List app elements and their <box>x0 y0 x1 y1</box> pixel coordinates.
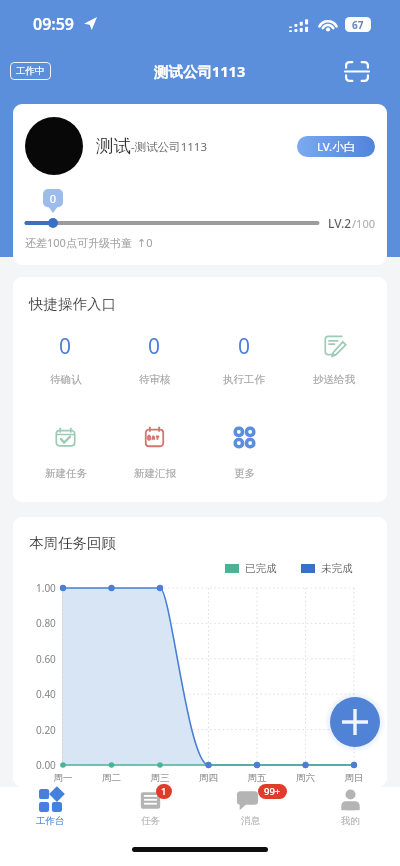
button[interactable]: 0 <box>110 332 199 386</box>
button[interactable]: 0 <box>199 332 289 386</box>
button[interactable]: 新建汇报 <box>110 426 199 480</box>
button[interactable]: 新建任务 <box>21 426 110 480</box>
staticText: 执行工作 <box>223 373 265 386</box>
staticText: 09:59 <box>33 13 75 35</box>
staticText: 1 <box>161 785 167 798</box>
button[interactable]: 我的 <box>300 787 400 832</box>
staticText: 快捷操作入口 <box>29 295 116 313</box>
staticText: 0 <box>43 191 63 206</box>
staticText: LV.2 <box>328 215 352 231</box>
staticText: 抄送给我 <box>313 373 355 386</box>
staticText: 0 <box>148 332 161 356</box>
staticText: 消息 <box>241 815 260 827</box>
button[interactable]: 工作中 <box>16 65 45 77</box>
button[interactable]: 1 <box>100 787 200 832</box>
staticText: 测试公司1113 <box>154 61 246 81</box>
staticText: ↑0 <box>137 235 153 250</box>
staticText: 67 <box>352 18 364 32</box>
staticText: LV.小白 <box>317 139 356 155</box>
staticText: 测试 <box>96 135 131 157</box>
button[interactable]: 更多 <box>199 426 289 480</box>
staticText: 新建任务 <box>45 467 87 480</box>
button[interactable]: 0 <box>21 332 110 386</box>
button[interactable]: 抄送给我 <box>289 332 379 386</box>
button[interactable]: 工作台 <box>0 787 100 832</box>
staticText: /100 <box>352 216 375 231</box>
button[interactable]: 99+ <box>200 787 300 832</box>
staticText: 更多 <box>234 467 255 480</box>
button[interactable]: Add <box>330 697 380 747</box>
button[interactable]: LV.小白 <box>297 136 375 157</box>
staticText: 未完成 <box>321 562 353 575</box>
staticText: 新建汇报 <box>134 467 176 480</box>
staticText: 待审核 <box>139 373 171 386</box>
staticText: 还差100点可升级书童 <box>25 235 132 250</box>
staticText: 0 <box>59 332 72 356</box>
staticText: -测试公司1113 <box>131 139 208 155</box>
staticText: 工作中 <box>16 65 45 77</box>
staticText: 我的 <box>341 815 360 827</box>
staticText: 任务 <box>141 815 160 827</box>
button[interactable]: Scan <box>340 54 374 88</box>
staticText: 99+ <box>264 785 281 798</box>
staticText: 工作台 <box>36 815 65 827</box>
staticText: 已完成 <box>245 562 277 575</box>
staticText: 本周任务回顾 <box>29 534 116 552</box>
staticText: 0 <box>238 332 251 356</box>
staticText: 待确认 <box>50 373 82 386</box>
